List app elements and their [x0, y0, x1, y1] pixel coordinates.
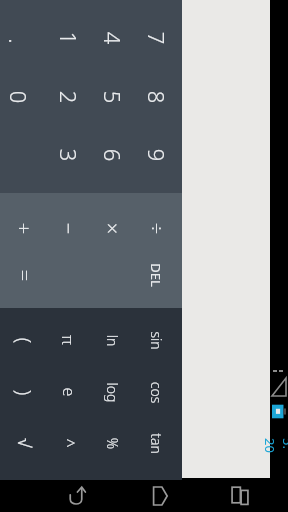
button[interactable]: + [2, 206, 46, 250]
staticText: 3 [53, 148, 83, 161]
button[interactable]: 0 [0, 75, 40, 119]
button[interactable]: % [90, 421, 134, 465]
staticText: e [57, 387, 79, 396]
staticText: ( [10, 337, 37, 343]
staticText: cos [146, 381, 165, 403]
button[interactable]: tan [134, 421, 178, 465]
button[interactable]: − [46, 206, 90, 250]
staticText: × [98, 222, 125, 234]
button[interactable]: π [46, 318, 90, 362]
staticText: ln [102, 334, 121, 346]
staticText: tan [147, 433, 166, 454]
staticText: sin [147, 331, 166, 350]
button[interactable]: 1 [46, 16, 90, 60]
button[interactable]: 3 [46, 133, 90, 177]
staticText: % [102, 437, 121, 449]
button[interactable]: e [46, 370, 90, 414]
button[interactable]: = [2, 253, 46, 297]
staticText: 6 [97, 148, 127, 161]
button[interactable]: 5 [90, 75, 134, 119]
staticText: ) [10, 389, 37, 395]
button[interactable]: Back [44, 480, 108, 512]
staticText: . [3, 38, 33, 44]
button[interactable]: ÷ [134, 206, 178, 250]
staticText: log [102, 382, 121, 402]
button[interactable]: log [90, 370, 134, 414]
staticText: ÷ [142, 222, 169, 234]
button[interactable]: 2 [46, 75, 90, 119]
button[interactable]: 9 [134, 133, 178, 177]
staticText: DEL [147, 263, 165, 287]
button[interactable]: sin [134, 318, 178, 362]
button[interactable]: × [90, 206, 134, 250]
staticText: 1 [53, 31, 83, 44]
staticText: √ [14, 438, 34, 448]
button[interactable]: cos [134, 370, 178, 414]
staticText: 0 [3, 90, 33, 103]
button[interactable]: 4 [90, 16, 134, 60]
button[interactable]: Display [182, 0, 270, 478]
button[interactable]: √ [2, 421, 46, 465]
button[interactable]: 7 [134, 16, 178, 60]
staticText: 7 [141, 31, 171, 44]
staticText: + [10, 222, 37, 234]
button[interactable]: Recent apps [208, 480, 272, 512]
staticText: ^ [57, 438, 79, 448]
button[interactable]: ) [2, 370, 46, 414]
button[interactable]: . [0, 19, 40, 63]
staticText: 5 [97, 90, 127, 103]
staticText: − [54, 222, 81, 234]
staticText: 8 [141, 90, 171, 103]
button[interactable]: 6 [90, 133, 134, 177]
button[interactable]: ^ [46, 421, 90, 465]
staticText: 5:20 [261, 438, 288, 456]
staticText: 2 [53, 90, 83, 103]
button[interactable]: ( [2, 318, 46, 362]
button[interactable]: ln [90, 318, 134, 362]
button[interactable]: 8 [134, 75, 178, 119]
button[interactable]: Home [128, 480, 192, 512]
staticText: 4 [97, 31, 127, 44]
button[interactable]: DEL [134, 253, 178, 297]
staticText: 9 [141, 148, 171, 161]
staticText: π [57, 335, 79, 345]
staticText: = [10, 269, 37, 281]
